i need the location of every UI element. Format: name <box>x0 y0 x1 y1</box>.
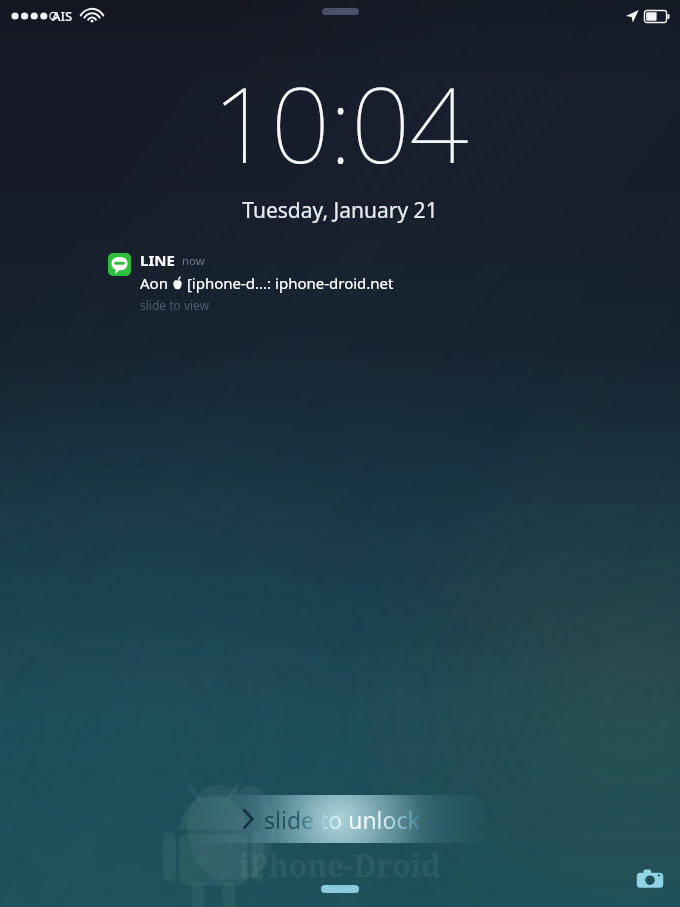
staticText: [iphone-d...: iphone-droid.net <box>183 273 394 293</box>
button[interactable]: Notification centre grabber <box>322 8 359 15</box>
staticText: slide to view <box>140 297 210 313</box>
button[interactable]: LINE <box>108 250 528 313</box>
staticText: slide to unlock <box>264 804 420 835</box>
button[interactable]: Camera <box>628 857 672 901</box>
staticText: LINE <box>140 250 175 270</box>
staticText: 10:04 <box>212 52 468 194</box>
staticText: AIS <box>52 7 73 25</box>
staticText: Aon <box>140 273 172 293</box>
button[interactable]: Slide to unlock <box>180 795 500 843</box>
staticText: Tuesday, January 21 <box>242 196 438 225</box>
button[interactable]: Home indicator <box>321 885 359 893</box>
staticText: now <box>182 253 205 269</box>
staticText: iPhone-Droid <box>239 845 441 886</box>
